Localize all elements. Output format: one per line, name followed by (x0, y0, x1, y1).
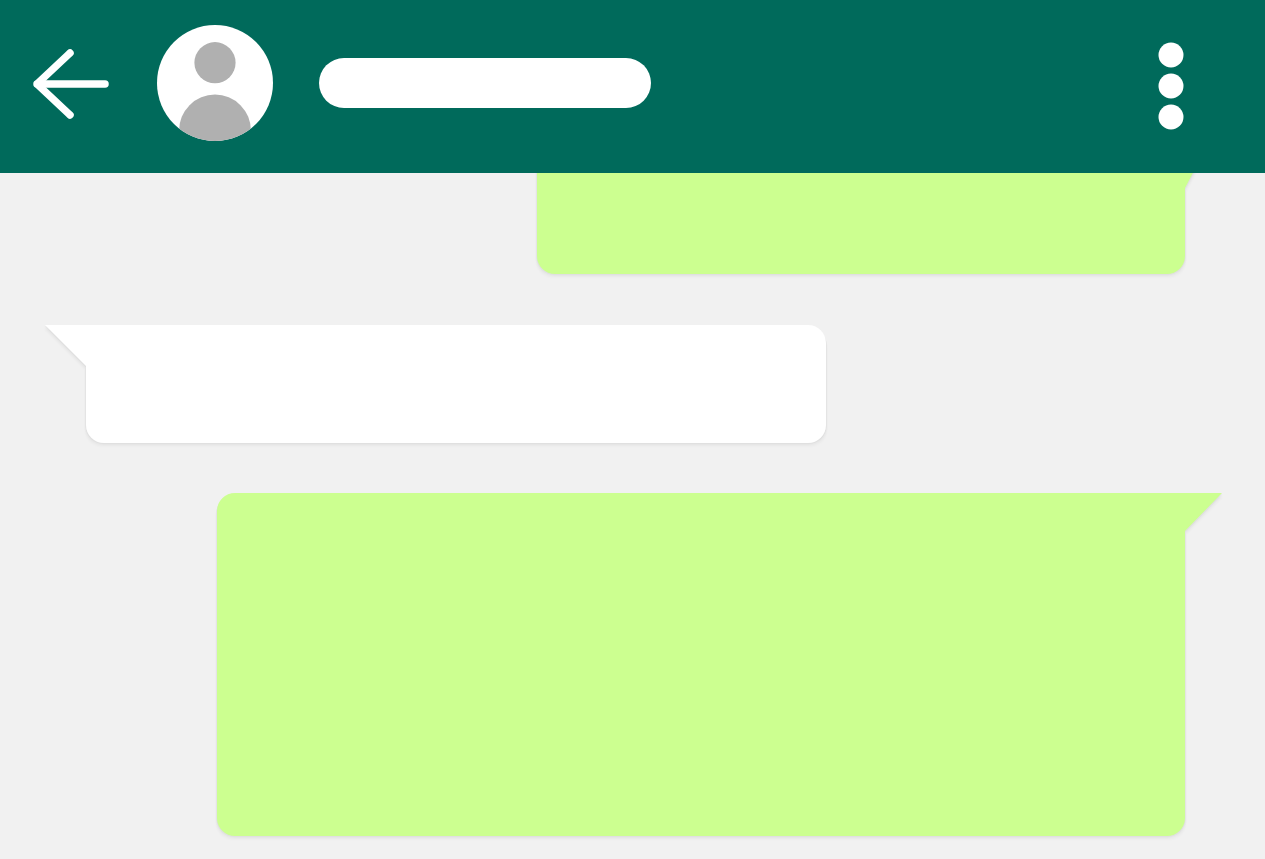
button[interactable]: Contact name (319, 58, 651, 108)
button[interactable]: Back (20, 34, 120, 134)
button[interactable]: Sent message (217, 493, 1222, 836)
button[interactable]: Received message (45, 325, 826, 443)
button[interactable]: Sent message (537, 173, 1205, 274)
button[interactable]: Contact profile photo (157, 25, 273, 141)
button[interactable]: More options (1140, 28, 1202, 140)
